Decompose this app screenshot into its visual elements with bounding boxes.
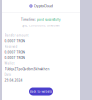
staticText: Date — [4, 73, 11, 76]
staticText: TUdqxZTpoQvdbm3khwkhen — [4, 67, 49, 71]
staticText: Transfer amount — [4, 33, 28, 37]
staticText: Received — [4, 45, 17, 48]
staticText: 0.0007 TRON — [4, 56, 24, 60]
staticText: 0.0007 TRON — [4, 50, 24, 54]
button[interactable]: Back to website — [29, 87, 53, 95]
staticText: Spec. Conditions: Unknown — [22, 24, 60, 27]
staticText: CryptoCloud — [34, 4, 53, 8]
staticText: 29.04.2024 — [4, 78, 22, 82]
staticText: 0.0007 TRON — [4, 39, 24, 43]
staticText: paid successfully — [37, 17, 61, 22]
staticText: Back to website — [29, 89, 52, 94]
staticText: Wallet — [4, 61, 14, 65]
staticText: Timeline: — [21, 17, 36, 22]
